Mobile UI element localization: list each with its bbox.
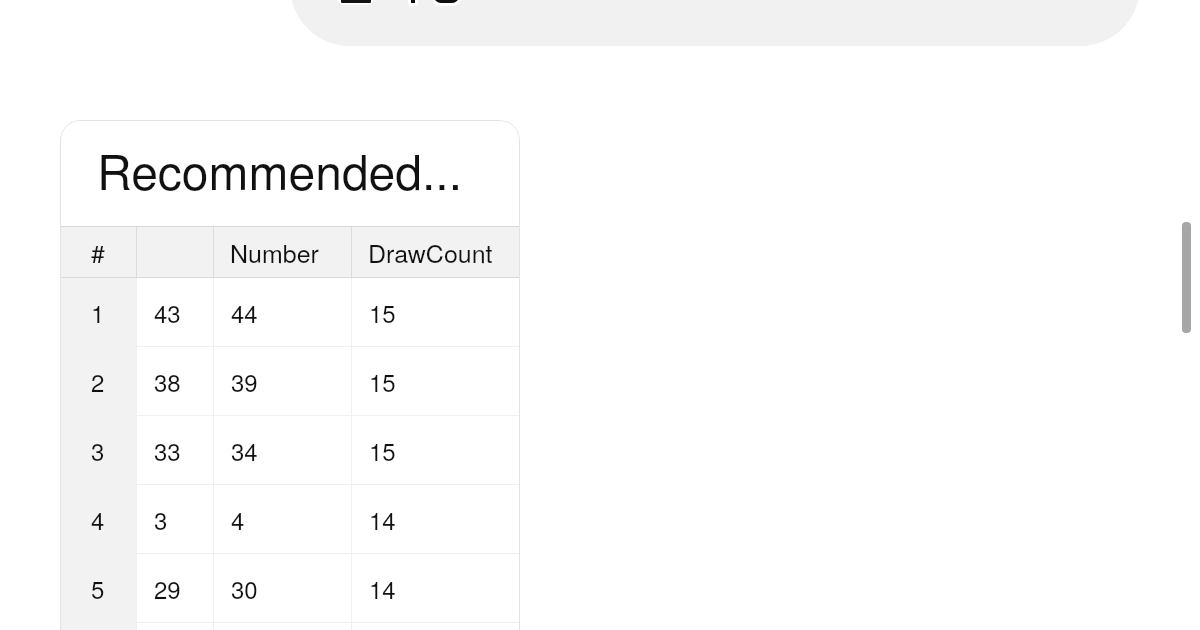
staticText: 30	[231, 571, 258, 605]
button[interactable]: 6	[60, 623, 520, 630]
staticText: 39	[231, 364, 258, 398]
staticText: 3	[91, 433, 105, 467]
button[interactable]: 1	[60, 278, 520, 347]
button[interactable]: Account	[432, 0, 461, 6]
staticText: 15	[369, 295, 396, 329]
staticText: 3	[154, 502, 168, 536]
staticText: 15	[369, 364, 396, 398]
staticText: 44	[231, 295, 258, 329]
button[interactable]: 4	[60, 485, 520, 554]
staticText: 4	[231, 502, 245, 536]
staticText: DrawCount	[368, 234, 493, 270]
button[interactable]: Recommended...	[60, 120, 520, 226]
staticText: 14	[369, 502, 396, 536]
button[interactable]: Toolbar	[290, 0, 1140, 46]
button[interactable]: 2	[60, 347, 520, 416]
staticText: 14	[369, 571, 396, 605]
staticText: 29	[154, 571, 181, 605]
staticText: 33	[154, 433, 181, 467]
staticText: Number	[230, 234, 319, 270]
staticText: 5	[91, 571, 105, 605]
button[interactable]: Menu	[337, 0, 374, 5]
staticText: #	[91, 234, 105, 270]
staticText: 15	[369, 433, 396, 467]
staticText: 38	[154, 364, 181, 398]
staticText: Recommended...	[97, 135, 462, 204]
staticText: 2	[91, 364, 105, 398]
staticText: 34	[231, 433, 258, 467]
staticText: 43	[154, 295, 181, 329]
button[interactable]: 3	[60, 416, 520, 485]
staticText: 1	[91, 295, 105, 329]
staticText: 4	[91, 502, 105, 536]
button[interactable]: 5	[60, 554, 520, 623]
